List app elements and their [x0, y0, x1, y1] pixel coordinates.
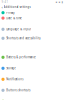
staticText: Battery & performance	[6, 55, 36, 59]
staticText: Date & time	[6, 16, 22, 20]
staticText: Language & input	[6, 27, 31, 31]
staticText: Additional settings	[4, 5, 31, 9]
button[interactable]: Language & input	[0, 27, 64, 31]
staticText: ▪ ▪ ▮	[55, 0, 62, 3]
button[interactable]: Privacy	[0, 11, 64, 14]
button[interactable]: Date & time	[0, 16, 64, 20]
staticText: Shortcuts and accessibility	[6, 36, 40, 40]
staticText: Notifications	[6, 77, 23, 81]
button[interactable]: Battery & performance	[0, 55, 64, 59]
button[interactable]: Buttons shortcuts	[0, 88, 64, 92]
button[interactable]: Notifications	[0, 77, 64, 81]
staticText: 9:41	[1, 0, 8, 4]
button[interactable]: Storage	[0, 66, 64, 70]
staticText: Buttons shortcuts	[6, 88, 30, 92]
button[interactable]: Shortcuts and accessibility	[0, 36, 64, 40]
staticText: ‹	[1, 4, 2, 10]
staticText: Privacy	[6, 11, 14, 14]
staticText: Storage	[6, 66, 16, 70]
